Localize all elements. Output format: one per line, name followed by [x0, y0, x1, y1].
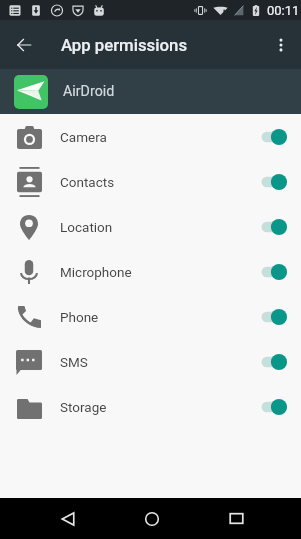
staticText: Microphone	[60, 264, 132, 280]
staticText: App permissions	[61, 35, 188, 55]
button[interactable]: Storage	[0, 384, 301, 429]
staticText: Contacts	[60, 174, 115, 190]
button[interactable]: Navigate up	[10, 31, 38, 59]
button[interactable]: Location permission toggle	[254, 212, 294, 242]
button[interactable]: Camera	[0, 114, 301, 159]
staticText: Camera	[60, 129, 107, 145]
staticText: AirDroid	[63, 83, 115, 100]
button[interactable]: SMS permission toggle	[254, 347, 294, 377]
staticText: Phone	[60, 309, 99, 325]
staticText: Location	[60, 219, 113, 235]
button[interactable]: Storage permission toggle	[254, 392, 294, 422]
button[interactable]: Recent apps	[194, 498, 278, 539]
button[interactable]: Phone	[0, 294, 301, 339]
button[interactable]: Phone permission toggle	[254, 302, 294, 332]
button[interactable]: Home	[110, 498, 194, 539]
button[interactable]: AirDroid	[0, 69, 301, 114]
button[interactable]: Back	[26, 498, 110, 539]
button[interactable]: Microphone permission toggle	[254, 257, 294, 287]
button[interactable]: Microphone	[0, 249, 301, 294]
staticText: SMS	[60, 354, 88, 370]
staticText: 00:11	[267, 3, 300, 18]
button[interactable]: Contacts	[0, 159, 301, 204]
button[interactable]: Contacts permission toggle	[254, 167, 294, 197]
button[interactable]: More options	[265, 29, 297, 61]
button[interactable]: SMS	[0, 339, 301, 384]
staticText: Storage	[60, 399, 107, 415]
button[interactable]: Camera permission toggle	[254, 122, 294, 152]
button[interactable]: Location	[0, 204, 301, 249]
